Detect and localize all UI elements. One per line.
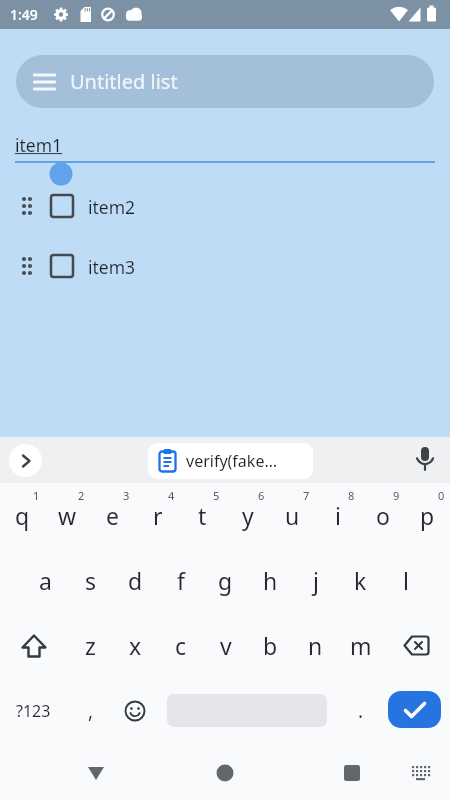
staticText: o xyxy=(376,500,390,531)
button[interactable]: , xyxy=(68,678,113,743)
button[interactable]: r xyxy=(135,483,180,548)
staticText: item1 xyxy=(15,133,63,157)
button[interactable]: h xyxy=(248,548,293,613)
staticText: z xyxy=(85,630,96,661)
staticText: item2 xyxy=(88,195,136,219)
button[interactable]: t xyxy=(180,483,225,548)
staticText: 2 xyxy=(78,488,85,503)
button[interactable]: f xyxy=(158,548,203,613)
button[interactable]: x xyxy=(113,613,158,678)
staticText: 3 xyxy=(123,488,130,503)
button[interactable]: w xyxy=(45,483,90,548)
staticText: i xyxy=(335,500,341,531)
button[interactable]: s xyxy=(68,548,113,613)
button[interactable]: o xyxy=(360,483,405,548)
button[interactable]: q xyxy=(0,483,45,548)
button[interactable] xyxy=(406,441,444,479)
button[interactable]: v xyxy=(203,613,248,678)
button[interactable]: e xyxy=(90,483,135,548)
button[interactable]: l xyxy=(383,548,428,613)
staticText: 4 xyxy=(168,488,175,503)
staticText: 9 xyxy=(393,488,400,503)
button[interactable]: n xyxy=(293,613,338,678)
button[interactable] xyxy=(383,613,450,678)
button[interactable]: b xyxy=(248,613,293,678)
button[interactable]: j xyxy=(293,548,338,613)
button[interactable]: k xyxy=(338,548,383,613)
button[interactable]: item2 xyxy=(0,177,450,237)
staticText: verify(fake… xyxy=(186,450,278,472)
button[interactable] xyxy=(396,749,444,797)
button[interactable]: i xyxy=(315,483,360,548)
staticText: g xyxy=(218,565,233,596)
staticText: l xyxy=(403,565,409,596)
staticText: w xyxy=(58,500,77,531)
button[interactable] xyxy=(9,444,42,477)
staticText: p xyxy=(420,500,435,531)
button[interactable]: a xyxy=(23,548,68,613)
staticText: h xyxy=(263,565,278,596)
staticText: x xyxy=(129,630,142,661)
staticText: 8 xyxy=(348,488,355,503)
staticText: s xyxy=(85,565,97,596)
staticText: 0 xyxy=(438,488,445,503)
staticText: v xyxy=(220,630,232,661)
staticText: q xyxy=(15,500,30,531)
button[interactable]: ?123 xyxy=(0,678,67,743)
button[interactable]: z xyxy=(68,613,113,678)
staticText: a xyxy=(39,565,52,596)
staticText: 5 xyxy=(213,488,220,503)
staticText: f xyxy=(177,565,185,596)
staticText: n xyxy=(308,630,323,661)
staticText: 6 xyxy=(258,488,265,503)
button[interactable]: p xyxy=(405,483,450,548)
button[interactable] xyxy=(0,613,67,678)
staticText: 1:49 xyxy=(10,5,38,24)
button[interactable] xyxy=(112,678,157,743)
staticText: y xyxy=(242,500,254,531)
staticText: Untitled list xyxy=(70,68,178,95)
button[interactable]: m xyxy=(338,613,383,678)
staticText: u xyxy=(285,500,300,531)
staticText: 7 xyxy=(303,488,310,503)
button[interactable]: g xyxy=(203,548,248,613)
staticText: e xyxy=(106,500,119,531)
button[interactable]: c xyxy=(158,613,203,678)
button[interactable] xyxy=(201,749,249,797)
staticText: item3 xyxy=(88,255,136,279)
staticText: j xyxy=(313,565,319,596)
button[interactable]: y xyxy=(225,483,270,548)
staticText: d xyxy=(128,565,143,596)
staticText: k xyxy=(354,565,367,596)
staticText: , xyxy=(88,698,94,724)
staticText: r xyxy=(153,500,163,531)
button[interactable]: item3 xyxy=(0,237,450,297)
staticText: b xyxy=(263,630,278,661)
staticText: m xyxy=(350,630,372,661)
button[interactable] xyxy=(328,749,376,797)
staticText: ?123 xyxy=(16,700,51,722)
button[interactable] xyxy=(72,749,120,797)
staticText: 1 xyxy=(33,488,40,503)
button[interactable]: u xyxy=(270,483,315,548)
button[interactable] xyxy=(388,691,441,728)
button[interactable]: d xyxy=(113,548,158,613)
button[interactable]: verify(fake… xyxy=(148,443,313,479)
button[interactable]: . xyxy=(338,678,383,743)
staticText: . xyxy=(358,698,364,724)
staticText: c xyxy=(175,630,187,661)
staticText: t xyxy=(198,500,207,531)
button[interactable]: Untitled list xyxy=(16,55,434,108)
